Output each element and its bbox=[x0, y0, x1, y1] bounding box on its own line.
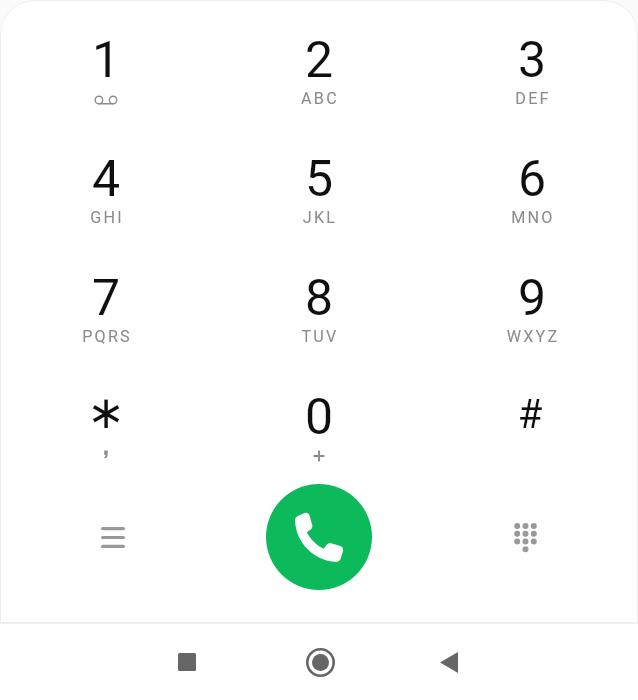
button[interactable]: Back bbox=[419, 632, 479, 692]
button[interactable]: Key * bbox=[20, 373, 192, 481]
staticText: 5 bbox=[249, 150, 389, 209]
staticText: 0 bbox=[249, 388, 389, 447]
button[interactable]: Home bbox=[290, 632, 350, 692]
button[interactable]: Recent apps bbox=[157, 632, 217, 692]
staticText: WXYZ bbox=[463, 327, 603, 346]
staticText: 6 bbox=[462, 150, 602, 209]
button[interactable]: Key 8 bbox=[233, 254, 405, 362]
button[interactable]: Key 2 bbox=[233, 16, 405, 124]
staticText: 7 bbox=[36, 269, 176, 328]
staticText: DEF bbox=[463, 89, 603, 108]
staticText: 3 bbox=[462, 31, 602, 90]
staticText: # bbox=[460, 391, 600, 438]
button[interactable]: Key 0 bbox=[233, 373, 405, 481]
button[interactable]: Key 4 bbox=[20, 135, 192, 243]
button[interactable]: Key 5 bbox=[233, 135, 405, 243]
button[interactable]: Key # bbox=[446, 373, 618, 481]
staticText: GHI bbox=[37, 208, 177, 227]
staticText: JKL bbox=[250, 208, 390, 227]
staticText: MNO bbox=[463, 208, 603, 227]
button[interactable]: Call bbox=[266, 484, 372, 590]
button[interactable]: Call history bbox=[75, 499, 151, 575]
staticText: 1 bbox=[36, 31, 176, 90]
button[interactable]: Key 1 bbox=[20, 16, 192, 124]
staticText: PQRS bbox=[37, 327, 177, 346]
button[interactable]: Key 3 bbox=[446, 16, 618, 124]
staticText: 2 bbox=[249, 31, 389, 90]
staticText: ABC bbox=[250, 89, 390, 108]
button[interactable]: Key 6 bbox=[446, 135, 618, 243]
button[interactable]: Key 9 bbox=[446, 254, 618, 362]
staticText: 4 bbox=[36, 150, 176, 209]
button[interactable]: Key 7 bbox=[20, 254, 192, 362]
button[interactable]: Dialpad bbox=[487, 499, 563, 575]
staticText: TUV bbox=[250, 327, 390, 346]
staticText: 8 bbox=[249, 269, 389, 328]
staticText: ∗ bbox=[36, 386, 176, 439]
staticText: 9 bbox=[462, 269, 602, 328]
